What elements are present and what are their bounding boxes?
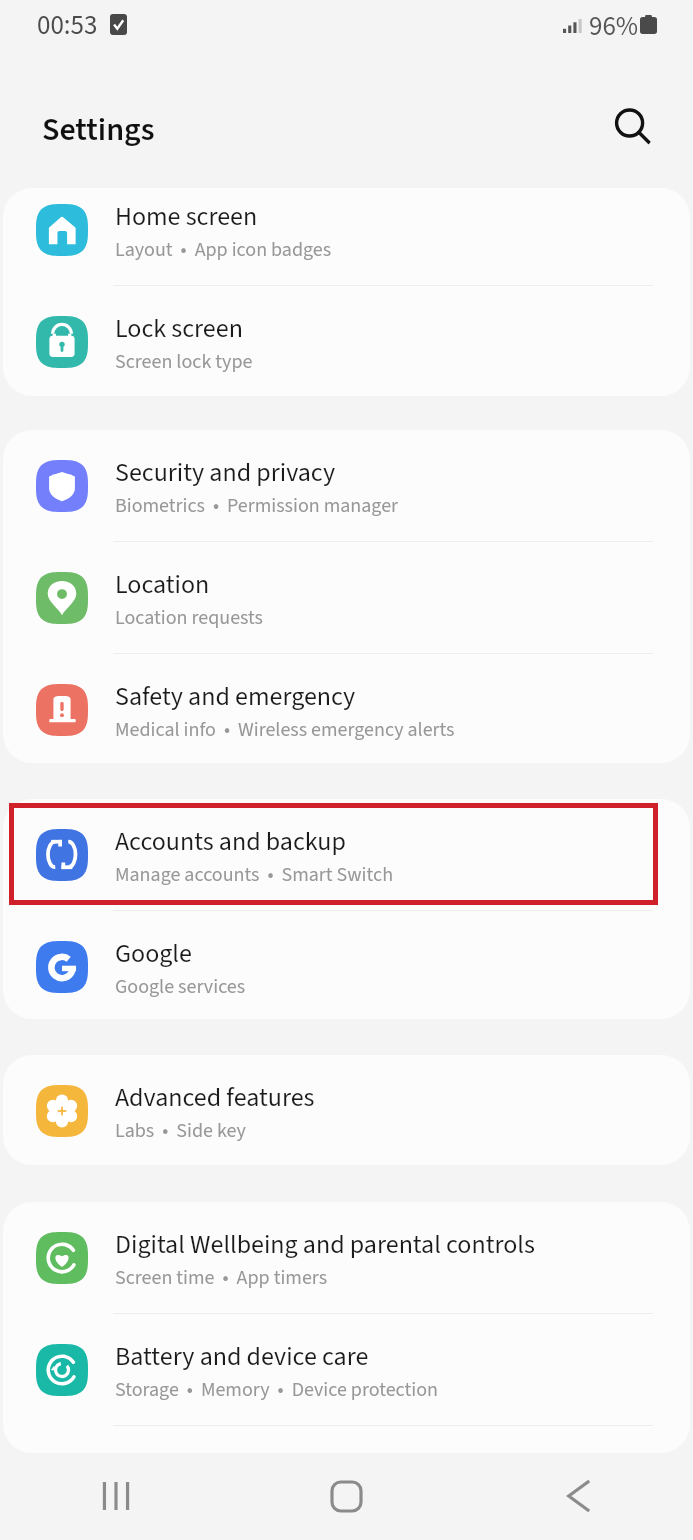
- button[interactable]: Home screen: [3, 188, 690, 285]
- staticText: Screen time • App timers: [115, 1264, 328, 1292]
- staticText: Home screen: [115, 198, 258, 235]
- button[interactable]: Home: [231, 1452, 462, 1540]
- button[interactable]: Digital Wellbeing and parental controls: [3, 1202, 690, 1313]
- staticText: Biometrics • Permission manager: [115, 492, 399, 520]
- staticText: Labs • Side key: [115, 1117, 246, 1145]
- staticText: Location: [115, 566, 210, 603]
- button[interactable]: Google: [3, 911, 690, 1019]
- staticText: Screen lock type: [115, 348, 253, 376]
- staticText: Digital Wellbeing and parental controls: [115, 1226, 535, 1263]
- staticText: Lock screen: [115, 310, 243, 347]
- staticText: Accounts and backup: [115, 823, 346, 860]
- button[interactable]: Battery and device care: [3, 1314, 690, 1425]
- staticText: Settings: [42, 107, 155, 153]
- button[interactable]: Advanced features: [3, 1055, 690, 1165]
- button[interactable]: Safety and emergency: [3, 654, 690, 763]
- button[interactable]: Location: [3, 542, 690, 653]
- button[interactable]: Search: [608, 103, 656, 151]
- staticText: Advanced features: [115, 1079, 315, 1116]
- staticText: Location requests: [115, 604, 263, 632]
- button[interactable]: Back: [462, 1452, 693, 1540]
- staticText: Storage • Memory • Device protection: [115, 1376, 438, 1404]
- staticText: Security and privacy: [115, 454, 336, 491]
- staticText: Safety and emergency: [115, 678, 356, 715]
- staticText: 00:53: [37, 6, 98, 44]
- staticText: Layout • App icon badges: [115, 236, 332, 264]
- button[interactable]: Lock screen: [3, 286, 690, 396]
- button[interactable]: Recent apps: [0, 1452, 231, 1540]
- staticText: Medical info • Wireless emergency alerts: [115, 716, 455, 744]
- staticText: Battery and device care: [115, 1338, 369, 1375]
- staticText: 96%: [589, 7, 639, 45]
- staticText: Manage accounts • Smart Switch: [115, 861, 394, 889]
- button[interactable]: Accounts and backup: [3, 799, 690, 910]
- button[interactable]: Security and privacy: [3, 430, 690, 541]
- staticText: Google: [115, 935, 192, 972]
- staticText: Google services: [115, 973, 246, 1001]
